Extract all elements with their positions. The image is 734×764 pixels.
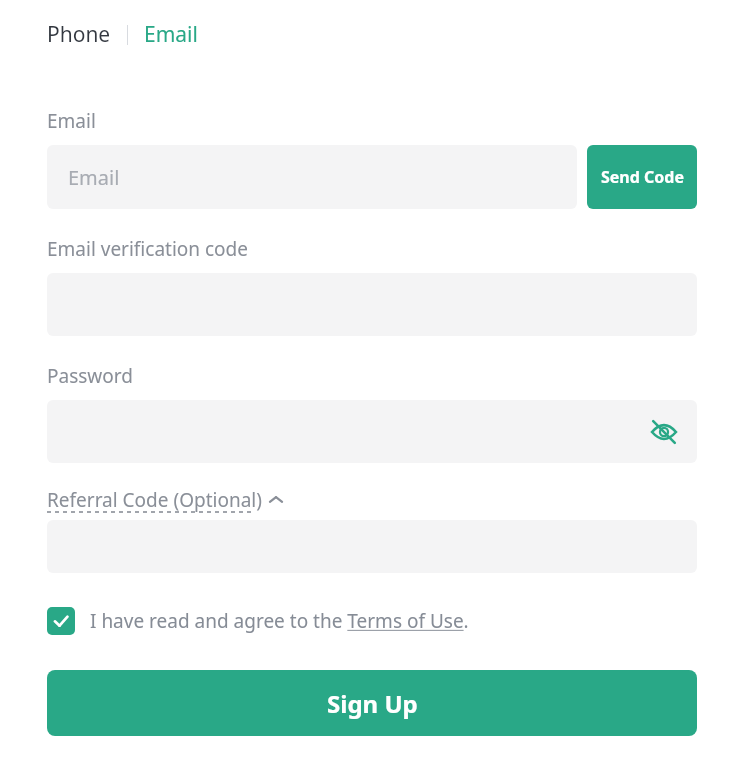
button[interactable]: Sign Up bbox=[47, 670, 697, 736]
button[interactable]: Email bbox=[144, 20, 198, 49]
staticText: Email bbox=[47, 108, 96, 134]
staticText: Referral Code (Optional) bbox=[47, 487, 262, 513]
staticText: Email bbox=[68, 164, 120, 191]
button[interactable]: I have read and agree to the Terms of Us… bbox=[47, 605, 469, 637]
button[interactable]: Phone bbox=[47, 20, 111, 49]
staticText: Phone bbox=[47, 20, 111, 49]
button[interactable]: Email bbox=[47, 145, 577, 209]
staticText: I have read and agree to the Terms of Us… bbox=[90, 608, 469, 634]
staticText: Password bbox=[47, 363, 133, 389]
button[interactable]: Show password bbox=[646, 414, 682, 450]
button[interactable]: Send Code bbox=[587, 145, 697, 209]
staticText: Send Code bbox=[601, 166, 684, 188]
staticText: Email bbox=[144, 20, 198, 49]
button[interactable]: Referral Code (Optional) bbox=[47, 487, 284, 513]
button[interactable] bbox=[47, 400, 697, 463]
staticText: Sign Up bbox=[327, 687, 418, 720]
staticText: Email verification code bbox=[47, 236, 249, 262]
